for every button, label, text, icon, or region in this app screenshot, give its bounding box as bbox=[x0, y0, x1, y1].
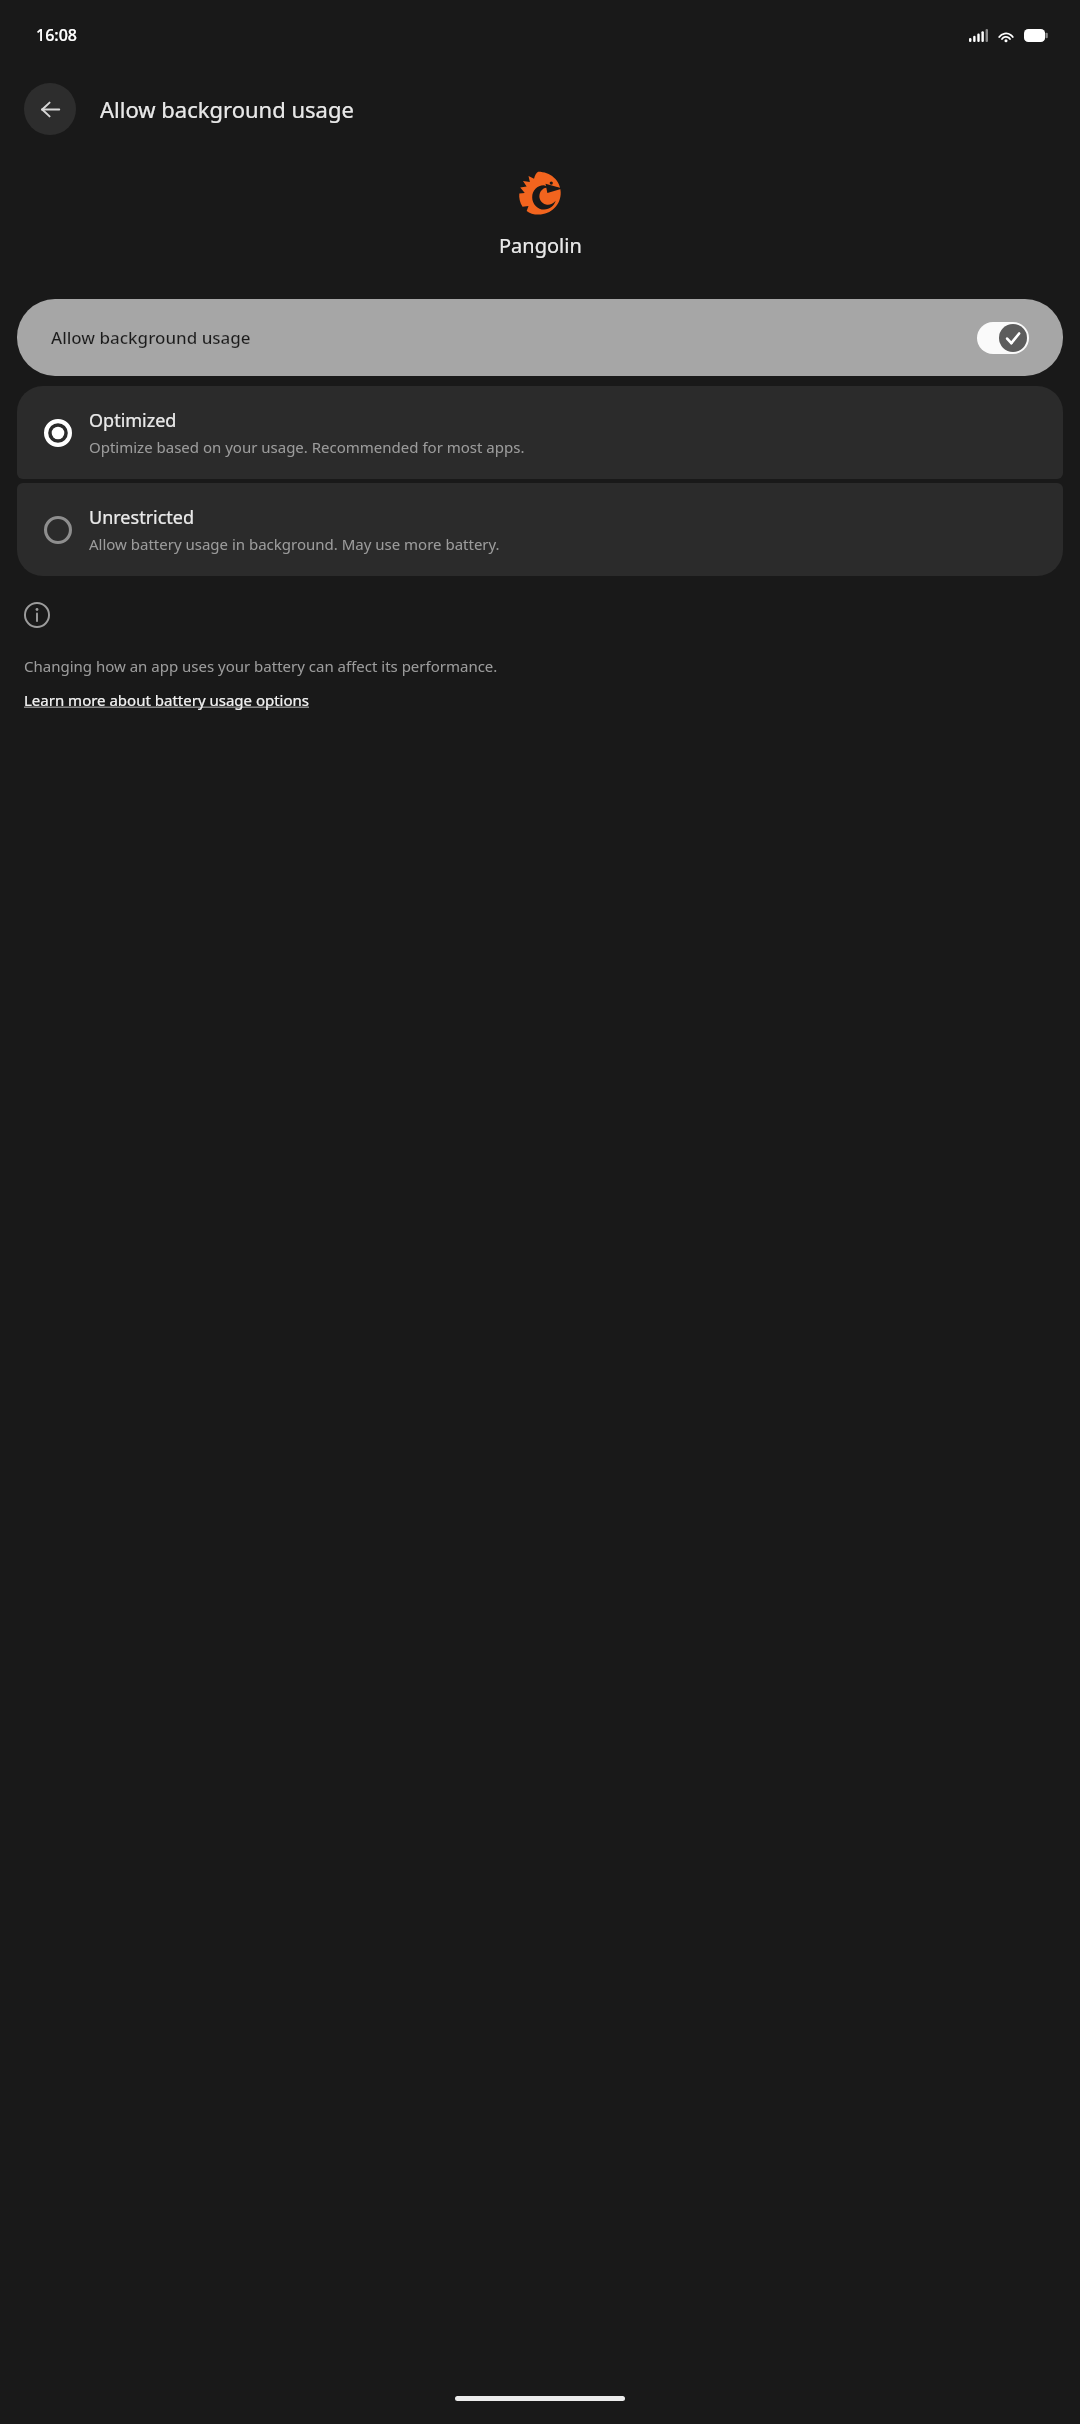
button[interactable]: Unrestricted bbox=[17, 483, 1063, 576]
staticText: 16:08 bbox=[36, 24, 77, 46]
button[interactable]: Back bbox=[24, 83, 76, 135]
button[interactable]: Optimized bbox=[17, 386, 1063, 479]
staticText: Pangolin bbox=[499, 232, 582, 259]
staticText: Allow battery usage in background. May u… bbox=[89, 534, 500, 554]
staticText: Optimize based on your usage. Recommende… bbox=[89, 437, 525, 457]
button[interactable]: Learn more about battery usage options bbox=[24, 690, 310, 710]
staticText: Changing how an app uses your battery ca… bbox=[24, 656, 498, 676]
staticText: Unrestricted bbox=[89, 505, 195, 530]
button[interactable]: Allow background usage bbox=[17, 299, 1063, 376]
staticText: Allow background usage bbox=[51, 326, 977, 349]
staticText: Allow background usage bbox=[100, 94, 354, 124]
staticText: Optimized bbox=[89, 408, 177, 433]
staticText: Learn more about battery usage options bbox=[24, 690, 310, 710]
